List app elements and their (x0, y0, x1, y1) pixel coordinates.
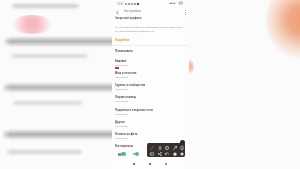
staticText: Имя и отчество (115, 71, 137, 75)
button[interactable]: More options (181, 8, 189, 16)
staticText: Настройки (124, 9, 141, 13)
staticText: Показывать (115, 49, 133, 53)
staticText: Только вам (115, 87, 128, 90)
button[interactable]: Eraser (179, 145, 184, 150)
staticText: Видеват (115, 59, 127, 63)
button[interactable]: Имя и отчество (115, 71, 185, 78)
staticText: 10:41 (117, 2, 124, 6)
button[interactable]: Pen (149, 145, 154, 150)
button[interactable]: Color (172, 151, 177, 156)
button[interactable]: Подробнее (115, 38, 130, 42)
button[interactable]: Pointer (172, 145, 177, 150)
staticText: Форма оповещ (115, 95, 137, 99)
staticText: Отметы на фото (115, 132, 138, 136)
button[interactable]: Crop (149, 151, 154, 156)
staticText: Подробнее (115, 38, 130, 42)
staticText: Только вам (115, 124, 128, 127)
staticText: Только вам (115, 99, 128, 102)
button[interactable]: Видеват (115, 59, 185, 66)
staticText: Другие (115, 120, 125, 124)
button[interactable]: Другие (115, 120, 185, 127)
staticText: Только вам (115, 112, 128, 115)
button[interactable]: Группы и сообщества (115, 83, 185, 90)
staticText: Только вам (115, 136, 128, 139)
staticText: Все поделены (115, 144, 134, 147)
button[interactable]: Undo (164, 151, 169, 156)
button[interactable]: Back (113, 8, 121, 16)
button[interactable]: Share (157, 151, 162, 156)
button[interactable]: Marker (157, 145, 162, 150)
button[interactable]: Share via message (133, 152, 139, 156)
staticText: Подписки и открытые сети (115, 108, 153, 112)
button[interactable]: Shape (164, 145, 169, 150)
staticText: Группы и сообщества (115, 83, 146, 87)
button[interactable]: Share via WhatsApp (118, 152, 126, 156)
button[interactable]: Форма оповещ (115, 95, 185, 102)
staticText: Закрытый профиль (115, 16, 142, 20)
button[interactable]: Отметы на фото (115, 132, 185, 139)
button[interactable]: Save (179, 151, 184, 156)
staticText: Эта настройка скрывает вашу информацию о… (115, 26, 186, 33)
button[interactable]: Подписки и открытые сети (115, 108, 185, 115)
staticText: Только вам (115, 75, 128, 78)
staticText: Только вам (115, 63, 128, 66)
